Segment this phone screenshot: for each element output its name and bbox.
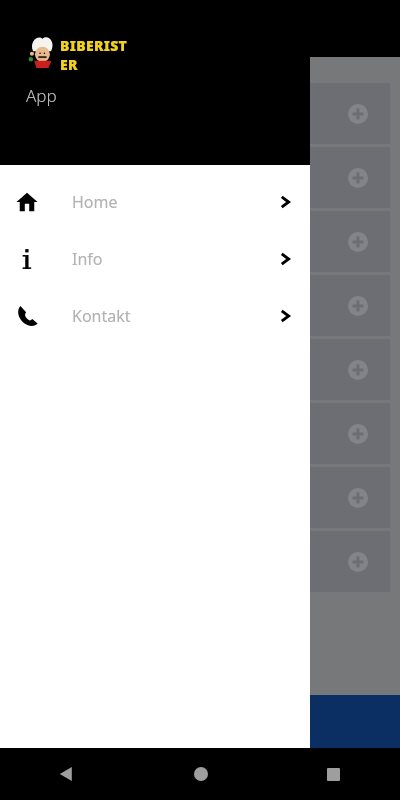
button[interactable] bbox=[10, 339, 390, 400]
button[interactable] bbox=[10, 83, 390, 144]
button[interactable]: Kontakt bbox=[0, 287, 310, 344]
staticText: Info bbox=[72, 248, 276, 270]
button[interactable] bbox=[10, 467, 390, 528]
button[interactable] bbox=[10, 211, 390, 272]
staticText: BIBERISTER bbox=[60, 36, 128, 70]
staticText: Kontakt bbox=[72, 305, 276, 327]
button[interactable]: Recent apps bbox=[267, 748, 400, 800]
button[interactable] bbox=[10, 403, 390, 464]
other: Home bbox=[16, 191, 38, 213]
other: Kontakt bbox=[16, 305, 38, 327]
button[interactable] bbox=[10, 147, 390, 208]
staticText: App bbox=[26, 84, 57, 107]
button[interactable] bbox=[10, 275, 390, 336]
button[interactable]: Info bbox=[0, 230, 310, 287]
button[interactable] bbox=[10, 531, 390, 592]
staticText: Home bbox=[72, 191, 276, 213]
button[interactable]: Back bbox=[0, 748, 134, 800]
button[interactable]: Home bbox=[134, 748, 267, 800]
other: Biberister logo bbox=[24, 36, 128, 70]
button[interactable]: Home bbox=[0, 173, 310, 230]
other: Info bbox=[16, 248, 38, 270]
